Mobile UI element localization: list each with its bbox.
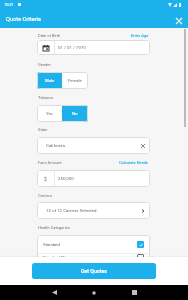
button[interactable]: Get Quotes xyxy=(32,263,156,279)
button[interactable]: 12 of 12 Carriers Selected xyxy=(37,202,150,219)
staticText: Quote Criteria xyxy=(6,16,41,23)
button[interactable]: 01 / 01 / 1970 xyxy=(37,40,150,55)
staticText: 12 of 12 Carriers Selected xyxy=(46,208,136,213)
staticText: California xyxy=(46,143,136,148)
staticText: $ xyxy=(44,176,47,182)
button[interactable]: $ xyxy=(37,170,150,187)
staticText: Date of Birth xyxy=(38,33,61,38)
button[interactable]: Standard xyxy=(43,235,144,253)
staticText: Face Amount xyxy=(38,160,62,165)
staticText: Yes xyxy=(46,111,53,116)
staticText: Get Quotes xyxy=(81,268,107,274)
button[interactable]: No xyxy=(62,105,88,122)
staticText: No xyxy=(72,111,78,116)
button[interactable]: Recents xyxy=(125,285,143,300)
button[interactable]: Male xyxy=(37,72,62,89)
staticText: Tobacco xyxy=(38,95,54,100)
button[interactable]: Enter Age xyxy=(131,33,149,38)
button[interactable]: Standard Plus xyxy=(43,254,144,261)
staticText: Carriers xyxy=(38,193,53,198)
button[interactable]: Clear state xyxy=(136,139,150,153)
staticText: 01 / 01 / 1970 xyxy=(58,45,86,50)
staticText: Female xyxy=(68,78,82,83)
staticText: Male xyxy=(45,78,55,83)
button[interactable]: Back xyxy=(45,285,63,300)
staticText: 10:31 xyxy=(4,2,14,7)
staticText: 250,000 xyxy=(58,176,74,181)
staticText: Health Categories xyxy=(38,225,70,230)
button[interactable]: California xyxy=(37,137,150,154)
button[interactable]: Calculate Needs xyxy=(119,160,149,165)
button[interactable]: Yes xyxy=(37,105,62,122)
button[interactable]: Female xyxy=(62,72,88,89)
button[interactable]: Close xyxy=(172,14,186,28)
staticText: Gender xyxy=(38,62,51,67)
staticText: Standard xyxy=(43,242,60,247)
button[interactable]: Home xyxy=(85,285,103,300)
staticText: Standard Plus xyxy=(43,255,69,260)
staticText: State xyxy=(38,127,48,132)
